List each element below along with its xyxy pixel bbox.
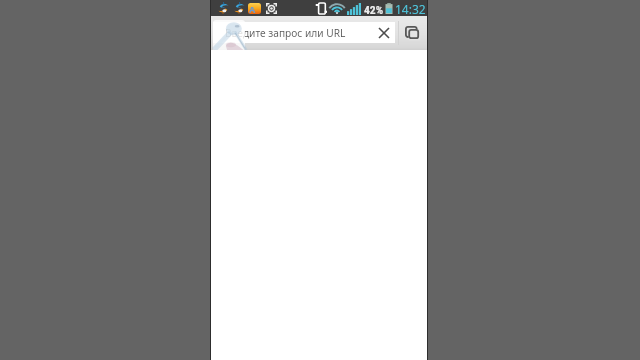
button[interactable]: Введите запрос или URL xyxy=(213,22,395,43)
staticText: 14:32 xyxy=(395,1,426,17)
staticText: A xyxy=(249,3,256,14)
button[interactable]: Tabs xyxy=(399,20,426,46)
staticText: 42% xyxy=(364,3,384,17)
button[interactable]: Clear xyxy=(373,22,395,43)
staticText: Введите запрос или URL xyxy=(225,26,346,40)
